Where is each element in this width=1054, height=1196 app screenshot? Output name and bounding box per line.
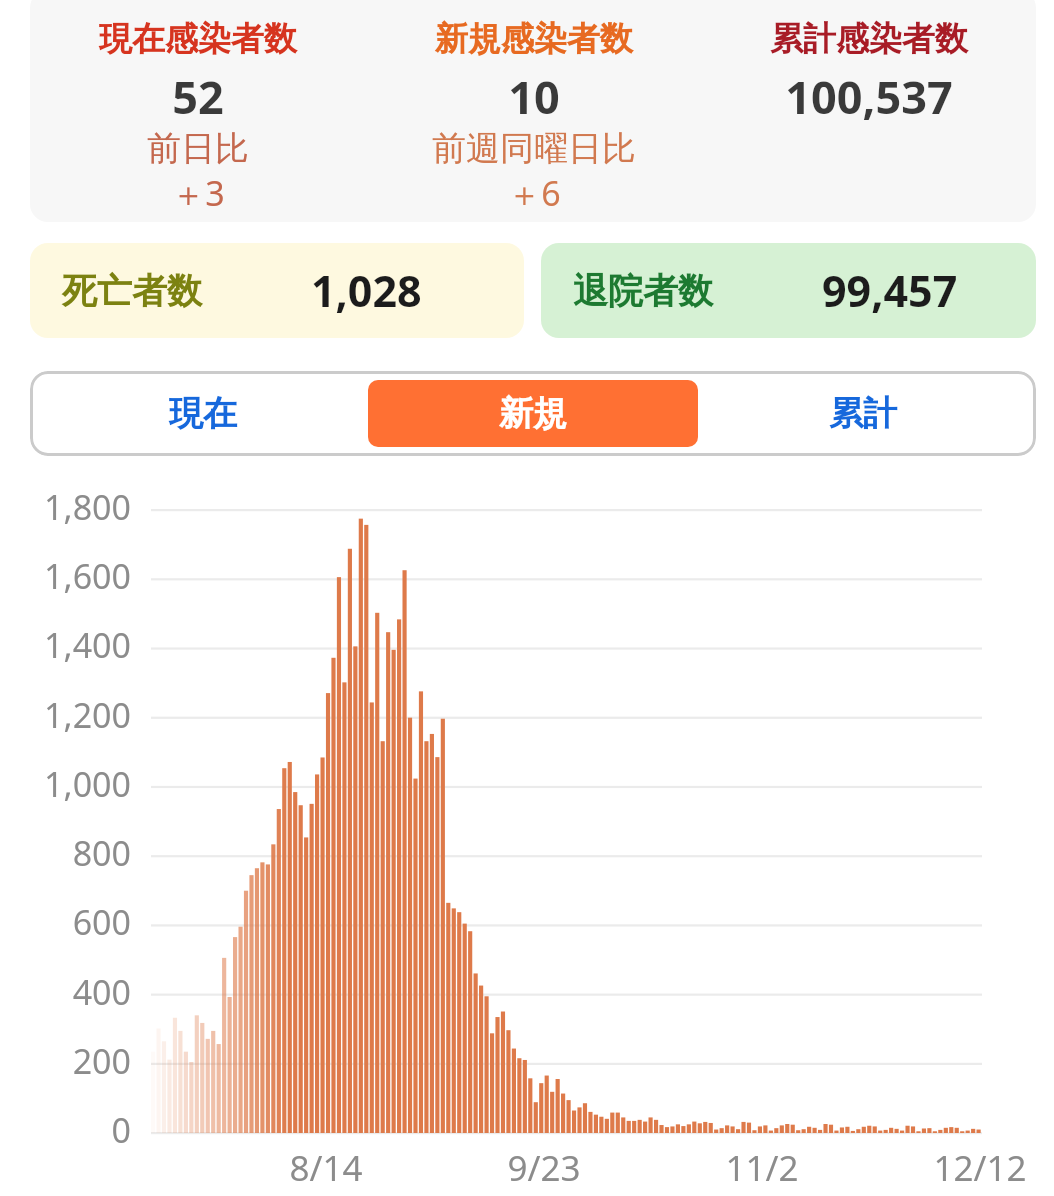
button[interactable]: 現在感染者数 xyxy=(30,0,1036,222)
button[interactable]: 新規 xyxy=(368,380,698,447)
staticText: 0 xyxy=(111,1107,131,1153)
staticText: 1,028 xyxy=(311,261,422,320)
staticText: ＋3 xyxy=(171,170,225,216)
staticText: 1,200 xyxy=(44,692,131,738)
staticText: 前日比 xyxy=(147,127,249,170)
staticText: 前週同曜日比 xyxy=(432,127,636,170)
staticText: 99,457 xyxy=(822,261,958,320)
staticText: 52 xyxy=(172,66,224,127)
staticText: 累計感染者数 xyxy=(770,18,968,60)
staticText: 200 xyxy=(72,1038,131,1084)
staticText: ＋6 xyxy=(507,170,561,216)
staticText: 9/23 xyxy=(507,1144,581,1192)
staticText: 1,400 xyxy=(44,622,131,668)
staticText: 10 xyxy=(508,66,560,127)
staticText: 累計 xyxy=(829,392,897,435)
staticText: 1,000 xyxy=(44,761,131,807)
staticText: 400 xyxy=(72,969,131,1015)
staticText: 現在感染者数 xyxy=(99,18,297,60)
button[interactable]: 現在 xyxy=(38,380,368,447)
staticText: 11/2 xyxy=(725,1144,799,1192)
button[interactable]: 累計 xyxy=(698,380,1028,447)
staticText: 新規 xyxy=(499,392,567,435)
button[interactable]: 退院者数 xyxy=(541,243,1036,338)
staticText: 100,537 xyxy=(785,66,953,127)
staticText: 現在 xyxy=(169,392,237,435)
staticText: 1,600 xyxy=(44,553,131,599)
staticText: 800 xyxy=(72,830,131,876)
staticText: 1,800 xyxy=(44,484,131,530)
staticText: 12/12 xyxy=(933,1144,1027,1192)
staticText: 新規感染者数 xyxy=(435,18,633,60)
staticText: 600 xyxy=(72,899,131,945)
staticText: 死亡者数 xyxy=(62,269,202,313)
button[interactable]: 死亡者数 xyxy=(30,243,524,338)
staticText: 8/14 xyxy=(289,1144,363,1192)
staticText: 退院者数 xyxy=(573,269,713,313)
